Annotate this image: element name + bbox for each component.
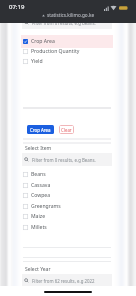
button[interactable]: Crop Area [21, 35, 113, 48]
staticText: Greengrams [31, 203, 61, 210]
button[interactable]: Millets [21, 222, 113, 233]
button[interactable]: Search [22, 16, 112, 29]
staticText: Cowpea [31, 192, 51, 199]
button[interactable]: Clear [59, 125, 74, 134]
button[interactable]: Search [22, 153, 112, 166]
button[interactable]: Production Quantity [21, 46, 113, 56]
staticText: 07:19 [9, 3, 25, 11]
staticText: Filter from 0 results, e.g Beans. [32, 157, 96, 163]
staticText: Select Item [25, 145, 52, 152]
staticText: Maize [31, 213, 46, 220]
button[interactable]: Cassava [21, 180, 113, 191]
button[interactable]: Crop Area [27, 125, 54, 134]
other: Search [24, 278, 29, 283]
staticText: Millets [31, 224, 47, 231]
staticText: Production Quantity [31, 48, 80, 55]
other: Search [24, 20, 29, 25]
button[interactable]: Cowpea [21, 190, 113, 201]
button[interactable]: Maize [21, 211, 113, 222]
button[interactable]: Search [22, 274, 112, 287]
staticText: Select Year [25, 266, 51, 273]
staticText: Yield [31, 58, 43, 65]
staticText: Filter from 0 results, e.g Beans. [32, 20, 96, 26]
staticText: Cassava [31, 182, 51, 189]
staticText: Beans [31, 171, 46, 178]
button[interactable]: Greengrams [21, 201, 113, 212]
staticText: Filter from 62 results, e.g 2022 [32, 278, 95, 284]
staticText: Crop Area [30, 127, 51, 133]
staticText: statistics.kilimo.go.ke [47, 12, 95, 18]
button[interactable]: Beans [21, 169, 113, 180]
staticText: Crop Area [31, 38, 55, 45]
other: Status icons [104, 5, 131, 11]
button[interactable]: 2020 [21, 290, 113, 296]
other: Search [24, 157, 29, 162]
button[interactable]: Yield [21, 56, 113, 66]
staticText: Clear [61, 127, 72, 133]
